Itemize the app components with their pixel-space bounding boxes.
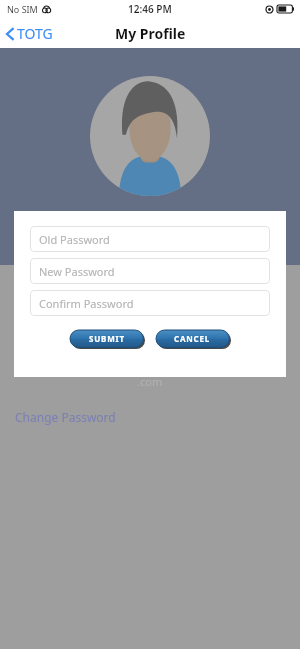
staticText: SUBMIT bbox=[89, 333, 125, 344]
staticText: CANCEL bbox=[174, 333, 211, 344]
button[interactable]: Old Password bbox=[30, 226, 270, 252]
staticText: Old Password bbox=[39, 232, 110, 247]
button[interactable]: CANCEL bbox=[156, 330, 231, 349]
button[interactable]: SUBMIT bbox=[70, 330, 145, 349]
staticText: Change Password bbox=[15, 409, 116, 425]
button[interactable]: Confirm Password bbox=[30, 290, 270, 316]
staticText: 12:46 PM bbox=[128, 2, 172, 16]
staticText: New Password bbox=[39, 264, 115, 279]
button[interactable]: Change Password bbox=[0, 406, 131, 428]
staticText: Confirm Password bbox=[39, 296, 134, 311]
staticText: My Profile bbox=[115, 24, 186, 43]
staticText: No SIM bbox=[7, 3, 38, 15]
button[interactable]: New Password bbox=[30, 258, 270, 284]
button[interactable]: TOTG bbox=[0, 20, 61, 47]
staticText: .com bbox=[137, 374, 163, 389]
staticText: TOTG bbox=[17, 24, 53, 43]
